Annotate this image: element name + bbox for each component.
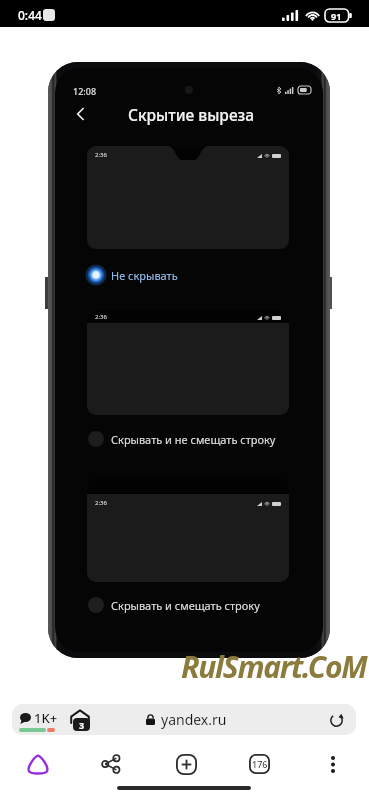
- button[interactable]: 1K+: [12, 704, 356, 735]
- button[interactable]: 2:36: [87, 310, 289, 415]
- staticText: 2:36: [95, 499, 107, 507]
- staticText: 3: [79, 719, 85, 731]
- staticText: 2:36: [95, 313, 107, 321]
- staticText: 2:36: [95, 151, 107, 159]
- staticText: RulSmart.CoM: [181, 646, 367, 687]
- button[interactable]: 2:36: [87, 146, 289, 249]
- staticText: 176: [252, 758, 268, 770]
- staticText: 12:08: [73, 85, 97, 97]
- staticText: Скрывать и не смещать строку: [111, 432, 276, 447]
- button[interactable]: Скрывать и не смещать строку: [55, 428, 323, 450]
- button[interactable]: 2:36: [87, 477, 289, 582]
- staticText: Не скрывать: [111, 268, 178, 283]
- button[interactable]: More: [309, 740, 357, 788]
- button[interactable]: Скрывать и смещать строку: [55, 594, 323, 616]
- staticText: 91: [331, 10, 342, 22]
- staticText: Скрывать и смещать строку: [111, 598, 260, 613]
- button[interactable]: Back: [70, 104, 90, 124]
- button[interactable]: Tabs: [69, 708, 91, 732]
- button[interactable]: Reload: [326, 710, 346, 730]
- staticText: yandex.ru: [161, 710, 227, 729]
- staticText: Скрытие выреза: [128, 104, 255, 125]
- staticText: 0:44: [18, 7, 42, 23]
- button[interactable]: Не скрывать: [55, 264, 323, 286]
- button[interactable]: Tabs 176: [235, 740, 283, 788]
- button[interactable]: Home: [14, 740, 62, 788]
- button[interactable]: Share: [87, 740, 135, 788]
- staticText: 1K+: [34, 709, 58, 727]
- button[interactable]: New tab: [162, 740, 210, 788]
